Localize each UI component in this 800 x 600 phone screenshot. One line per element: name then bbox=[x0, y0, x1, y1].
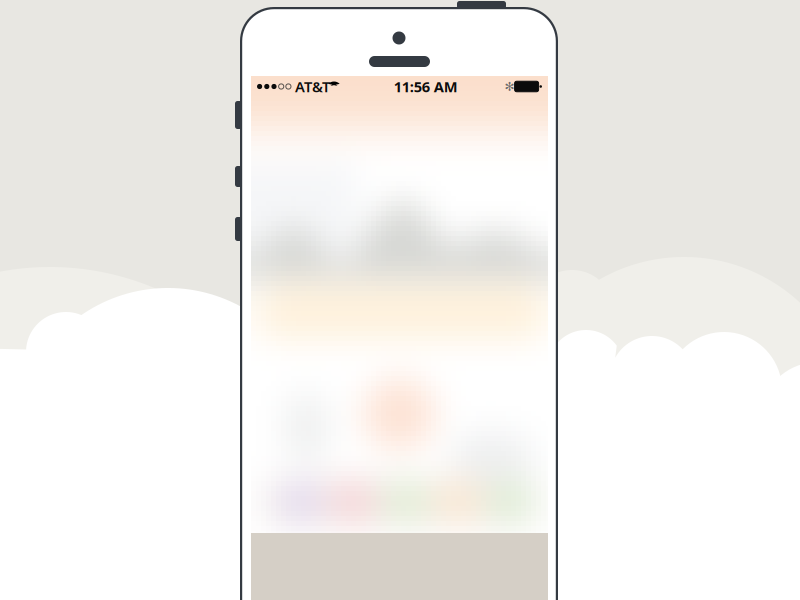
staticText: ✻ bbox=[505, 80, 515, 93]
staticText: 11:56 AM bbox=[394, 77, 458, 96]
staticText: AT&T bbox=[291, 77, 334, 96]
